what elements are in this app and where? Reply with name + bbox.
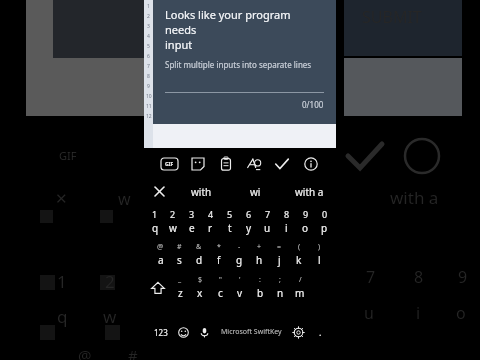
staticText: 2 [105,270,115,293]
staticText: 3 [189,208,195,220]
staticText: 6 [246,208,252,220]
button[interactable]: : [250,271,270,304]
button[interactable]: ' [230,271,250,304]
button[interactable]: & [189,238,209,271]
button[interactable]: ( [289,238,309,271]
staticText: 6 [147,53,150,60]
button[interactable]: with [174,178,228,205]
staticText: with a [390,186,439,209]
button[interactable]: ; [270,271,290,304]
staticText: p [321,221,328,235]
staticText: GIF [165,161,174,168]
button[interactable]: Stickers [187,153,209,175]
staticText: i [285,221,288,235]
staticText: with a [295,185,324,199]
staticText: & [196,242,202,252]
button[interactable]: wi [228,178,282,205]
button[interactable]: Microsoft SwiftKey [215,304,287,360]
button[interactable]: + [249,238,269,271]
staticText: 8 [414,266,424,288]
staticText: / [299,275,302,285]
button[interactable]: 3 [182,205,201,238]
button[interactable]: 8 [277,205,296,238]
staticText: d [196,253,203,267]
staticText: . [319,326,322,338]
staticText: o [456,302,466,324]
staticText: : [259,275,261,285]
staticText: ) [318,242,321,252]
button[interactable]: Close suggestions [144,178,174,205]
staticText: # [128,345,138,360]
button[interactable]: with a [282,178,336,205]
staticText: ( [298,242,301,252]
button[interactable]: - [229,238,249,271]
staticText: ; [279,275,281,285]
button[interactable]: = [269,238,289,271]
button[interactable]: 4 [201,205,220,238]
staticText: z [178,286,183,300]
button[interactable]: _ [170,271,190,304]
staticText: # [177,242,182,252]
button[interactable]: Emoji [173,304,193,360]
button[interactable]: 6 [239,205,258,238]
button[interactable]: # [170,238,189,271]
button[interactable]: / [290,271,310,304]
staticText: w [103,305,117,328]
staticText: 7 [265,208,271,220]
staticText: 8 [284,208,290,220]
staticText: n [277,286,284,300]
button[interactable]: " [210,271,230,304]
staticText: " [219,275,222,285]
button[interactable]: Translate [243,153,265,175]
staticText: * [217,242,221,252]
staticText: 11 [146,103,152,110]
button[interactable]: 0 [315,205,334,238]
button[interactable]: Proofread [271,153,293,175]
staticText: Looks like your program needs input [165,7,324,52]
staticText: with [191,185,212,199]
staticText: u [364,302,374,324]
staticText: wi [250,185,261,199]
staticText: _ [178,275,182,285]
staticText: t [228,221,232,235]
button[interactable]: Clipboard [215,153,237,175]
staticText: s [177,253,182,267]
button[interactable]: 9 [296,205,315,238]
button[interactable]: 5 [220,205,239,238]
button[interactable]: Info [300,153,322,175]
button[interactable]: ) [309,238,329,271]
staticText: 2 [147,13,150,20]
staticText: f [217,253,221,267]
staticText: 1 [57,270,67,293]
staticText: - [238,242,241,252]
staticText: c [218,286,223,300]
button[interactable]: 2 [164,205,182,238]
staticText: ✕ [55,190,68,207]
button[interactable]: Settings [287,304,309,360]
staticText: 5 [227,208,233,220]
staticText: 8 [147,73,150,80]
button[interactable]: GIF [158,153,180,175]
staticText: + [257,242,262,252]
button[interactable]: $ [190,271,210,304]
button[interactable]: Voice input [193,304,215,360]
button[interactable]: . [309,304,331,360]
button[interactable]: 123 [149,304,173,360]
button[interactable]: Shift [146,271,170,304]
staticText: j [278,253,281,267]
staticText: a [158,253,164,267]
staticText: ' [239,275,241,285]
button[interactable]: @ [151,238,170,271]
button[interactable]: * [209,238,229,271]
staticText: 2 [170,208,176,220]
staticText: Split multiple inputs into separate line… [165,59,312,70]
staticText: m [295,286,305,300]
staticText: w [118,188,131,210]
button[interactable]: 1 [146,205,164,238]
button[interactable]: 7 [258,205,277,238]
staticText: 9 [458,266,468,288]
